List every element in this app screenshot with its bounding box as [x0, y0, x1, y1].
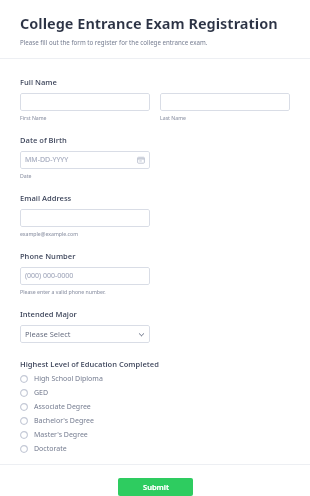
staticText: Intended Major [20, 309, 77, 319]
staticText: example@example.com [20, 230, 79, 237]
button[interactable]: Master's Degree [20, 428, 290, 442]
button[interactable] [20, 93, 150, 111]
staticText: Please Select [25, 329, 138, 339]
button[interactable]: Doctorate [20, 442, 290, 456]
staticText: Full Name [20, 77, 57, 87]
button[interactable]: Bachelor's Degree [20, 414, 290, 428]
staticText: Doctorate [34, 444, 67, 454]
staticText: Date of Birth [20, 135, 67, 145]
staticText: Email Address [20, 193, 72, 203]
staticText: College Entrance Exam Registration [20, 13, 278, 33]
button[interactable] [160, 93, 290, 111]
other: Open dropdown [138, 331, 145, 338]
staticText: Phone Number [20, 251, 76, 261]
button[interactable]: Submit [118, 478, 193, 496]
staticText: Date [20, 172, 32, 179]
staticText: Bachelor's Degree [34, 416, 94, 426]
staticText: First Name [20, 114, 47, 121]
staticText: (000) 000-0000 [25, 271, 74, 281]
staticText: MM-DD-YYYY [25, 155, 69, 165]
button[interactable]: High School Diploma [20, 372, 290, 386]
button[interactable]: GED [20, 386, 290, 400]
other: Pick date [137, 156, 145, 164]
staticText: Associate Degree [34, 402, 91, 412]
staticText: Submit [143, 482, 169, 492]
button[interactable]: Associate Degree [20, 400, 290, 414]
button[interactable]: (000) 000-0000 [20, 267, 150, 285]
button[interactable]: MM-DD-YYYY [20, 151, 150, 169]
staticText: GED [34, 388, 49, 398]
staticText: Please enter a valid phone number. [20, 288, 106, 295]
button[interactable] [20, 209, 150, 227]
staticText: Please fill out the form to register for… [20, 38, 208, 46]
staticText: Highest Level of Education Completed [20, 359, 159, 369]
staticText: Master's Degree [34, 430, 88, 440]
staticText: Last Name [160, 114, 186, 121]
staticText: High School Diploma [34, 374, 103, 384]
button[interactable]: Please Select [20, 325, 150, 343]
